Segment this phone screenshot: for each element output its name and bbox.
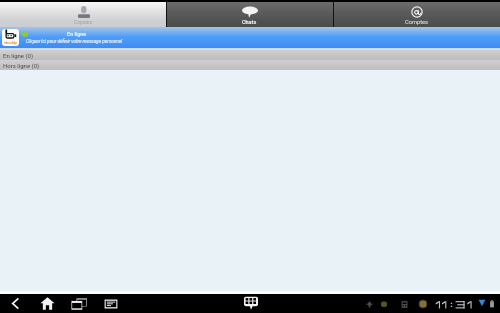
staticText: En ligne (0): [3, 52, 33, 59]
button[interactable]: Hors ligne (0): [0, 60, 500, 70]
button[interactable]: Copains: [0, 2, 166, 27]
button[interactable]: Comptes: [333, 2, 500, 27]
staticText: Hors ligne (0): [3, 62, 40, 69]
button[interactable]: Home: [38, 294, 57, 313]
button[interactable]: Chats: [166, 2, 333, 27]
button[interactable]: Recent apps: [69, 294, 88, 313]
staticText: ebuddy: [4, 40, 17, 45]
button[interactable]: Change keyboard: [241, 294, 260, 313]
button[interactable]: Back: [6, 294, 25, 313]
staticText: En ligne: [67, 31, 87, 37]
staticText: Copains: [74, 19, 93, 25]
button[interactable]: Menu: [101, 294, 120, 313]
staticText: Cliquer ici pour définir votre message p…: [26, 39, 123, 45]
button[interactable]: En ligne (0): [0, 50, 500, 60]
button[interactable]: ebuddy: [0, 27, 500, 48]
staticText: Chats: [242, 19, 257, 25]
staticText: Comptes: [405, 19, 428, 26]
